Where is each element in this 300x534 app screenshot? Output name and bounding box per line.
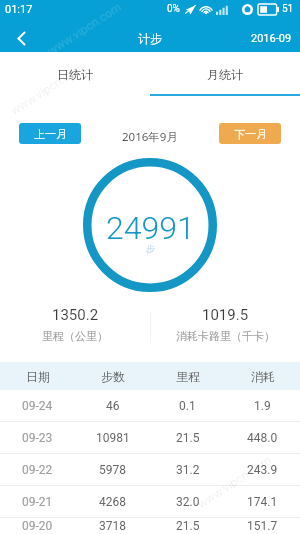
button[interactable]: 09-23 (0, 422, 300, 453)
staticText: www.vipcn.com (195, 453, 274, 511)
staticText: 5978 (99, 463, 126, 477)
button[interactable]: 日统计 (0, 52, 150, 96)
staticText: 09-22 (22, 463, 53, 477)
staticText: 21.5 (176, 431, 200, 445)
staticText: 1019.5 (202, 306, 249, 324)
staticText: 0% (167, 3, 180, 15)
staticText: 上一月 (34, 127, 67, 141)
staticText: 10981 (96, 431, 130, 445)
staticText: 计步 (138, 31, 162, 46)
button[interactable]: 09-20 (0, 518, 300, 534)
staticText: 步 (146, 243, 155, 254)
staticText: 174.1 (247, 495, 278, 509)
button[interactable]: 2016-09 (251, 29, 300, 42)
staticText: 消耗 (251, 369, 275, 384)
staticText: 步数 (101, 369, 125, 384)
staticText: 月统计 (207, 67, 243, 82)
staticText: 21.5 (176, 519, 200, 533)
staticText: 下一月 (234, 127, 267, 141)
staticText: www.vipcn.com (45, 0, 124, 58)
staticText: 01:17 (5, 3, 33, 16)
staticText: 3718 (99, 519, 126, 533)
staticText: 09-20 (22, 519, 53, 533)
staticText: 1.9 (254, 399, 271, 413)
staticText: 32.0 (176, 495, 200, 509)
staticText: 24991 (106, 209, 195, 247)
staticText: 里程 (176, 369, 200, 384)
button[interactable]: 09-22 (0, 454, 300, 485)
staticText: 51 (282, 3, 294, 15)
staticText: 1350.2 (52, 306, 99, 324)
staticText: 448.0 (247, 431, 278, 445)
staticText: 46 (106, 399, 120, 413)
staticText: 日期 (26, 369, 50, 384)
staticText: 243.9 (247, 463, 278, 477)
staticText: 2016年9月 (122, 129, 178, 145)
button[interactable]: 月统计 (150, 52, 300, 96)
button[interactable]: 09-21 (0, 486, 300, 517)
staticText: 31.2 (176, 463, 200, 477)
staticText: 09-23 (22, 431, 53, 445)
staticText: 0.1 (179, 399, 196, 413)
staticText: 消耗卡路里（千卡） (176, 329, 275, 343)
staticText: 09-21 (22, 495, 53, 509)
staticText: 里程（公里） (42, 329, 108, 343)
staticText: 151.7 (247, 519, 278, 533)
button[interactable]: Back (4, 21, 38, 55)
staticText: 日统计 (57, 67, 93, 82)
button[interactable]: 下一月 (219, 123, 281, 144)
button[interactable]: 上一月 (19, 123, 81, 144)
button[interactable]: 09-24 (0, 390, 300, 421)
staticText: www.vipcn.com (8, 60, 87, 118)
staticText: 4268 (99, 495, 126, 509)
staticText: 09-24 (22, 399, 53, 413)
